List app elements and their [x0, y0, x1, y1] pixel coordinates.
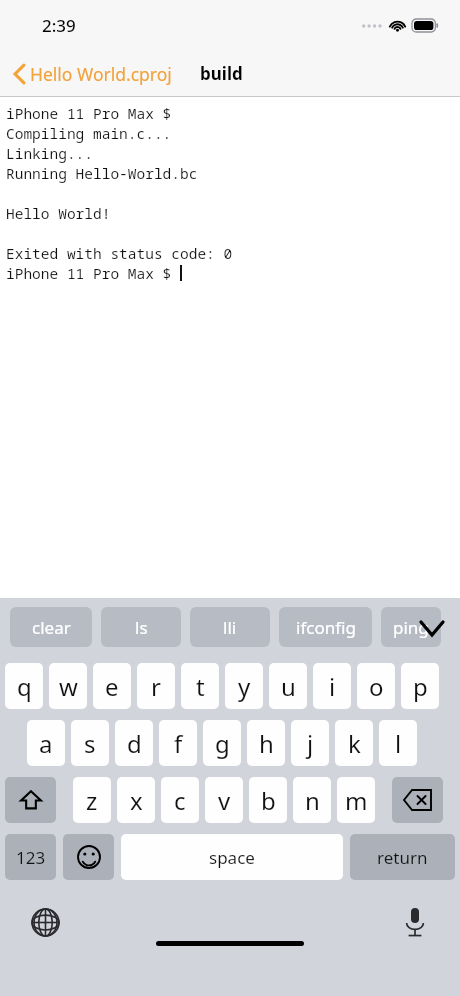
staticText: 2:39 [42, 14, 76, 37]
staticText: g [215, 727, 230, 760]
button[interactable]: Shift [5, 777, 56, 823]
staticText: w [59, 670, 78, 703]
staticText: k [348, 727, 361, 760]
staticText: iPhone 11 Pro Max $ [6, 263, 180, 283]
button[interactable]: j [291, 720, 329, 766]
staticText: m [345, 784, 368, 817]
staticText: s [84, 727, 96, 760]
button[interactable]: h [247, 720, 285, 766]
button[interactable]: k [335, 720, 373, 766]
button[interactable]: Emoji [63, 834, 114, 880]
button[interactable]: Dictate [396, 903, 434, 941]
staticText: v [218, 784, 231, 817]
staticText: ls [135, 616, 148, 639]
button[interactable]: m [337, 777, 375, 823]
button[interactable]: b [249, 777, 287, 823]
button[interactable]: return [350, 834, 455, 880]
button[interactable]: z [73, 777, 111, 823]
staticText: q [17, 670, 32, 703]
button[interactable]: r [137, 663, 175, 709]
button[interactable]: t [181, 663, 219, 709]
button[interactable]: ifconfig [279, 607, 372, 647]
staticText: return [377, 846, 428, 869]
staticText: l [395, 727, 402, 760]
button[interactable]: ping [381, 607, 441, 647]
staticText: lli [223, 616, 237, 639]
button[interactable]: Backspace [392, 777, 443, 823]
staticText: 123 [16, 846, 46, 869]
button[interactable]: q [5, 663, 43, 709]
staticText: Running Hello-World.bc [6, 163, 198, 183]
button[interactable]: g [203, 720, 241, 766]
staticText: a [39, 727, 53, 760]
button[interactable]: u [269, 663, 307, 709]
other: Back [13, 63, 26, 85]
staticText: f [174, 727, 183, 760]
staticText: Hello World! [6, 203, 111, 223]
button[interactable]: f [159, 720, 197, 766]
staticText: z [86, 784, 98, 817]
staticText: Hello World.cproj [30, 62, 172, 86]
staticText: Exited with status code: 0 [6, 243, 233, 263]
button[interactable]: e [93, 663, 131, 709]
staticText: e [105, 670, 119, 703]
button[interactable]: lli [190, 607, 270, 647]
button[interactable]: 123 [5, 834, 56, 880]
staticText: r [151, 670, 161, 703]
button[interactable]: w [49, 663, 87, 709]
button[interactable]: clear [10, 607, 92, 647]
staticText: h [259, 727, 274, 760]
staticText: c [174, 784, 186, 817]
staticText: j [307, 727, 314, 760]
staticText: d [127, 727, 142, 760]
staticText: space [209, 846, 255, 869]
staticText: iPhone 11 Pro Max $ [6, 103, 172, 123]
button[interactable]: y [225, 663, 263, 709]
button[interactable]: l [379, 720, 417, 766]
button[interactable]: x [117, 777, 155, 823]
button[interactable]: Hide keyboard [412, 608, 452, 648]
staticText: i [329, 670, 336, 703]
staticText: ping [393, 616, 429, 639]
staticText: x [130, 784, 143, 817]
button[interactable]: ls [101, 607, 181, 647]
button[interactable]: Change keyboard [26, 903, 64, 941]
button[interactable]: Back [13, 62, 172, 86]
staticText: t [196, 670, 205, 703]
button[interactable]: n [293, 777, 331, 823]
staticText: u [281, 670, 296, 703]
staticText: y [238, 670, 251, 703]
staticText: b [261, 784, 276, 817]
button[interactable]: space [121, 834, 343, 880]
button[interactable]: a [27, 720, 65, 766]
button[interactable]: c [161, 777, 199, 823]
staticText: ifconfig [296, 616, 356, 639]
button[interactable]: o [357, 663, 395, 709]
staticText: clear [32, 616, 71, 639]
staticText: n [305, 784, 320, 817]
staticText: Compiling main.c... [6, 123, 172, 143]
button[interactable]: p [401, 663, 439, 709]
staticText: Linking... [6, 143, 93, 163]
button[interactable]: v [205, 777, 243, 823]
button[interactable]: s [71, 720, 109, 766]
staticText: build [200, 62, 243, 85]
staticText: p [413, 670, 428, 703]
staticText: o [369, 670, 384, 703]
button[interactable]: i [313, 663, 351, 709]
button[interactable]: d [115, 720, 153, 766]
